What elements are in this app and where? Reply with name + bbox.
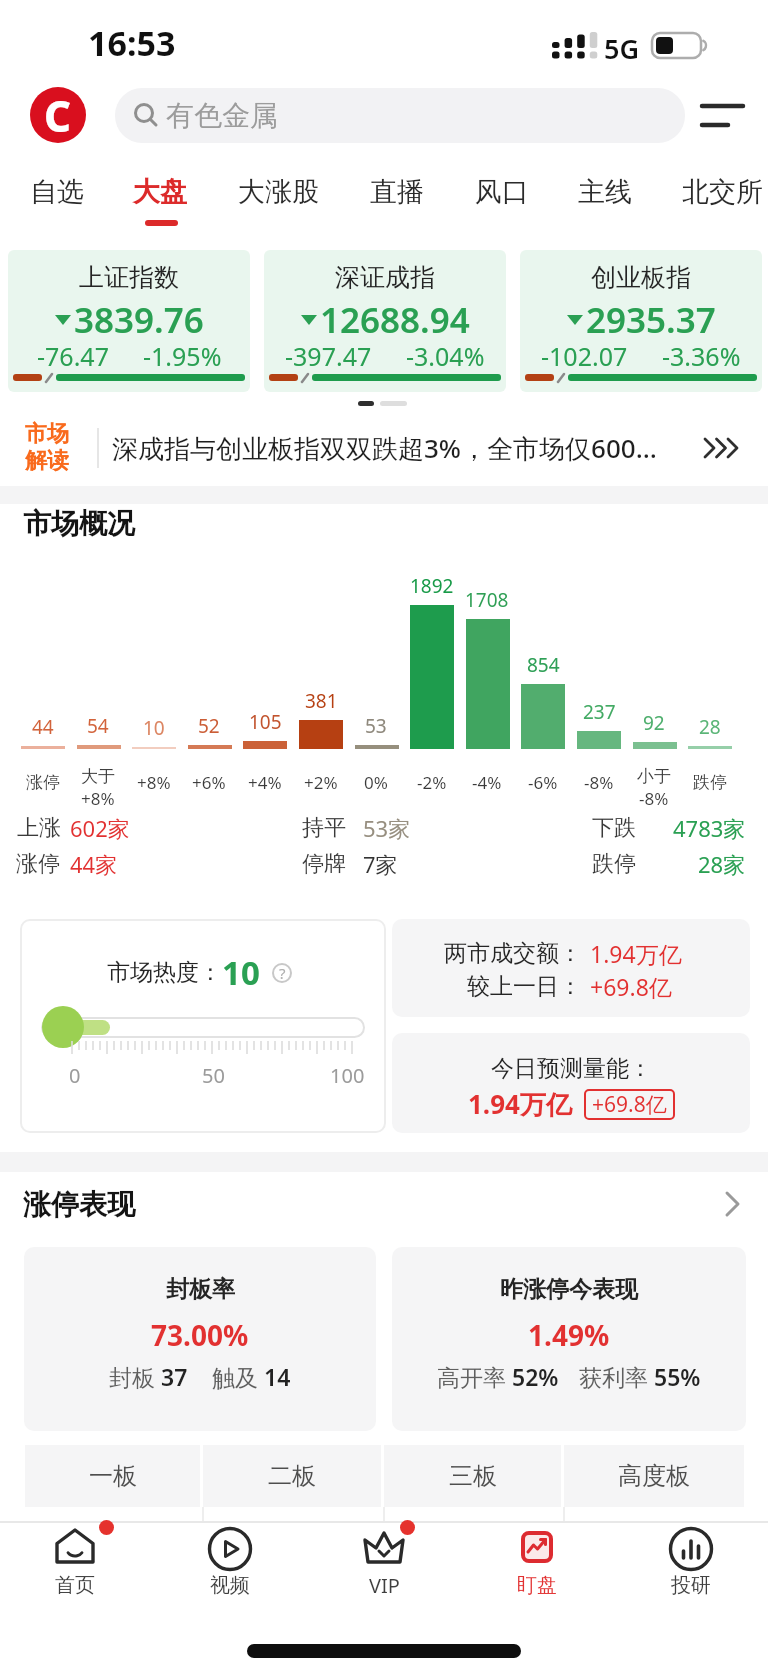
staticText: 小于 bbox=[637, 766, 671, 787]
staticText: -76.47 bbox=[37, 339, 109, 369]
staticText: 两市成交额： bbox=[444, 939, 582, 968]
staticText: 市场 bbox=[25, 420, 69, 446]
staticText: 381 bbox=[305, 688, 338, 714]
staticText: 100 bbox=[330, 1062, 365, 1089]
staticText: 1892 bbox=[410, 573, 454, 599]
staticText: 92 bbox=[643, 710, 665, 736]
staticText: -4% bbox=[472, 771, 502, 794]
staticText: 今日预测量能： bbox=[491, 1054, 652, 1083]
staticText: 602家 bbox=[70, 813, 130, 843]
staticText: -3.04% bbox=[406, 339, 485, 369]
staticText: 视频 bbox=[210, 1573, 250, 1598]
staticText: 二板 bbox=[268, 1461, 316, 1491]
staticText: 1.94万亿 bbox=[590, 938, 682, 968]
staticText: 53家 bbox=[363, 813, 411, 843]
staticText: +8% bbox=[81, 787, 115, 810]
staticText: 大盘 bbox=[133, 175, 187, 209]
staticText: 28家 bbox=[698, 849, 746, 879]
staticText: 深证成指 bbox=[335, 262, 435, 293]
staticText: 52 bbox=[198, 713, 220, 739]
staticText: 北交所 bbox=[682, 175, 763, 209]
staticText: ? bbox=[279, 963, 286, 983]
staticText: 37 bbox=[161, 1361, 188, 1392]
staticText: 0% bbox=[364, 771, 388, 794]
staticText: 涨停表现 bbox=[23, 1187, 135, 1222]
staticText: 获利率 bbox=[579, 1361, 654, 1392]
staticText: 12688.94 bbox=[320, 296, 470, 342]
staticText: 封板 bbox=[109, 1361, 161, 1392]
staticText: 3839.76 bbox=[74, 296, 204, 342]
staticText: 73.00% bbox=[151, 1316, 249, 1352]
staticText: +69.8亿 bbox=[590, 971, 672, 1001]
staticText: 0 bbox=[69, 1062, 81, 1089]
staticText: 大于 bbox=[81, 766, 115, 787]
staticText: 1708 bbox=[465, 587, 509, 613]
staticText: 高开率 bbox=[437, 1361, 512, 1392]
staticText: 10 bbox=[222, 950, 260, 995]
staticText: 三板 bbox=[449, 1461, 497, 1491]
staticText: 55% bbox=[654, 1361, 701, 1392]
staticText: 风口 bbox=[475, 175, 529, 209]
staticText: 解读 bbox=[25, 447, 69, 473]
staticText: 跌停 bbox=[693, 772, 727, 793]
staticText: 封板率 bbox=[166, 1275, 235, 1304]
staticText: 4783家 bbox=[673, 813, 746, 843]
staticText: 105 bbox=[249, 709, 282, 735]
staticText: -6% bbox=[528, 771, 558, 794]
staticText: 1.94万亿 bbox=[468, 1086, 572, 1122]
staticText: -1.95% bbox=[143, 339, 222, 369]
staticText: 44 bbox=[32, 714, 54, 740]
staticText: 1.49% bbox=[528, 1316, 610, 1352]
staticText: 创业板指 bbox=[591, 262, 691, 293]
staticText: 市场热度： bbox=[107, 958, 222, 987]
staticText: 28 bbox=[699, 714, 721, 740]
staticText: 有色金属 bbox=[166, 98, 278, 133]
staticText: 持平 bbox=[302, 814, 346, 842]
staticText: 237 bbox=[583, 699, 616, 725]
staticText: 上证指数 bbox=[79, 262, 179, 293]
staticText: 深成指与创业板指双双跌超3%，全市场仅600... bbox=[112, 430, 657, 466]
staticText: 52% bbox=[512, 1361, 559, 1392]
staticText: 上涨 bbox=[17, 814, 61, 842]
staticText: 触及 bbox=[212, 1361, 264, 1392]
staticText: 跌停 bbox=[592, 850, 636, 878]
staticText: 高度板 bbox=[618, 1461, 690, 1491]
staticText: 14 bbox=[264, 1361, 291, 1392]
staticText: 5G bbox=[604, 30, 640, 62]
staticText: 停牌 bbox=[302, 850, 346, 878]
staticText: 较上一日： bbox=[467, 972, 582, 1001]
staticText: +69.8亿 bbox=[592, 1090, 667, 1119]
staticText: C bbox=[44, 87, 72, 143]
staticText: -2% bbox=[417, 771, 447, 794]
staticText: VIP bbox=[369, 1572, 400, 1599]
staticText: 53 bbox=[365, 713, 387, 739]
staticText: 44家 bbox=[70, 849, 118, 879]
staticText: 昨涨停今表现 bbox=[500, 1275, 638, 1304]
staticText: 54 bbox=[87, 713, 109, 739]
staticText: 盯盘 bbox=[517, 1573, 557, 1598]
staticText: -102.07 bbox=[541, 339, 628, 369]
staticText: 涨停 bbox=[16, 850, 60, 878]
staticText: 一板 bbox=[89, 1461, 137, 1491]
staticText: 大涨股 bbox=[238, 175, 319, 209]
staticText: 直播 bbox=[370, 175, 424, 209]
staticText: 投研 bbox=[671, 1573, 711, 1598]
staticText: 16:53 bbox=[88, 20, 176, 64]
staticText: 7家 bbox=[363, 849, 398, 879]
staticText: 自选 bbox=[30, 175, 84, 209]
staticText: -397.47 bbox=[285, 339, 372, 369]
staticText: +6% bbox=[192, 771, 226, 794]
staticText: +4% bbox=[248, 771, 282, 794]
staticText: 涨停 bbox=[26, 772, 60, 793]
staticText: 2935.37 bbox=[586, 296, 716, 342]
staticText: -3.36% bbox=[662, 339, 741, 369]
staticText: +8% bbox=[137, 771, 171, 794]
staticText: 首页 bbox=[55, 1573, 95, 1598]
staticText: 854 bbox=[527, 652, 560, 678]
staticText: 10 bbox=[143, 715, 165, 741]
staticText: -8% bbox=[639, 787, 669, 810]
staticText: 主线 bbox=[578, 175, 632, 209]
staticText: 50 bbox=[202, 1062, 225, 1089]
staticText: +2% bbox=[304, 771, 338, 794]
staticText: 下跌 bbox=[592, 814, 636, 842]
